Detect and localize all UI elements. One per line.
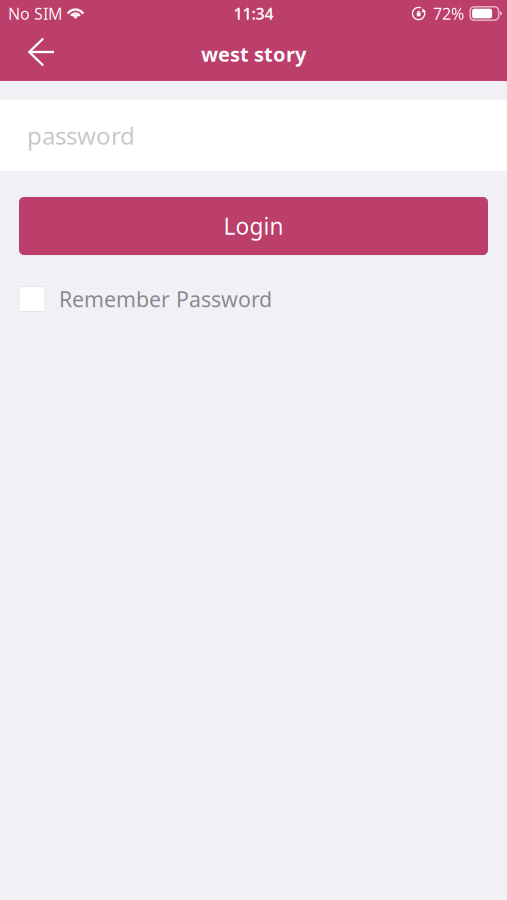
staticText: Login: [223, 211, 283, 241]
staticText: 72%: [433, 3, 464, 24]
button[interactable]: Remember Password: [0, 276, 507, 322]
staticText: password: [27, 120, 135, 151]
staticText: No SIM: [8, 3, 63, 24]
button[interactable]: password: [0, 100, 507, 171]
button[interactable]: Login: [19, 197, 488, 255]
button[interactable]: Back: [16, 28, 68, 80]
staticText: 11:34: [233, 3, 273, 24]
staticText: west story: [201, 41, 306, 67]
staticText: Remember Password: [59, 285, 272, 313]
